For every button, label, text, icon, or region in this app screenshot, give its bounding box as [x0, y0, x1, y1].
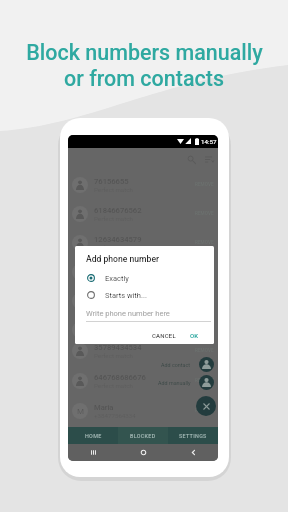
button[interactable]: BLOCKED: [118, 427, 168, 444]
button[interactable]: HOME: [68, 427, 118, 444]
button[interactable]: OK: [187, 330, 202, 341]
staticText: REMOVE: [195, 348, 214, 354]
button[interactable]: SETTINGS: [168, 427, 218, 444]
staticText: REMOVE: [195, 240, 214, 246]
button[interactable]: Add manually: [199, 375, 214, 390]
staticText: 61846676562: [94, 206, 142, 215]
staticText: 646768686676: [94, 373, 146, 382]
staticText: HOME: [85, 433, 102, 439]
staticText: 38768686838: [94, 293, 142, 302]
staticText: M: [77, 407, 84, 416]
button[interactable]: 61846676562: [72, 199, 214, 228]
button[interactable]: Back: [168, 444, 218, 461]
staticText: Perfect match: [94, 244, 133, 251]
staticText: REMOVE: [195, 211, 214, 217]
staticText: OK: [190, 332, 199, 339]
staticText: Perfect match: [94, 273, 133, 280]
staticText: Starts with...: [105, 291, 147, 300]
button[interactable]: CANCEL: [149, 330, 179, 341]
staticText: Maria: [94, 403, 114, 412]
staticText: BLOCKED: [130, 433, 156, 439]
staticText: 76156655: [94, 177, 129, 186]
staticText: REMOVE: [195, 182, 214, 188]
staticText: Add manually: [158, 380, 191, 386]
staticText: or from contacts: [64, 66, 224, 91]
button[interactable]: Recents: [68, 444, 118, 461]
button[interactable]: 23768745334: [72, 315, 214, 344]
staticText: 12634634579: [94, 235, 142, 244]
button[interactable]: M: [72, 396, 214, 425]
staticText: Add phone number: [86, 254, 160, 264]
staticText: Add contact: [161, 362, 191, 368]
button[interactable]: Home: [118, 444, 168, 461]
staticText: 14:57: [201, 138, 217, 145]
staticText: REMOVE: [195, 378, 214, 384]
button[interactable]: 646768686676: [72, 366, 214, 395]
button[interactable]: Add contact: [199, 357, 214, 372]
button[interactable]: Close menu: [196, 396, 216, 416]
button[interactable]: Starts with...: [86, 288, 196, 302]
button[interactable]: 35789434534: [72, 336, 214, 365]
staticText: Exactly: [105, 274, 129, 283]
staticText: 35789434534: [94, 343, 142, 352]
staticText: Write phone number here: [86, 309, 170, 318]
button[interactable]: Exactly: [86, 271, 196, 285]
button[interactable]: 84768547834: [72, 257, 214, 286]
button[interactable]: 12634634579: [72, 228, 214, 257]
staticText: CANCEL: [152, 332, 176, 339]
staticText: Block numbers manually: [26, 40, 263, 65]
staticText: REMOVE: [195, 408, 214, 414]
button[interactable]: 38768686838: [72, 286, 214, 315]
staticText: SETTINGS: [179, 433, 207, 439]
